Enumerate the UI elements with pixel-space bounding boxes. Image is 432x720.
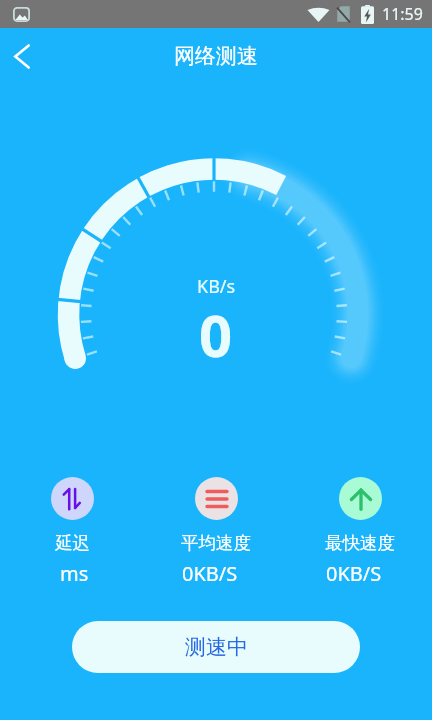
staticText: 平均速度	[181, 532, 251, 554]
staticText: 延迟	[55, 532, 90, 554]
button[interactable]: 最快速度	[300, 477, 420, 587]
button[interactable]: 测速中	[72, 621, 360, 673]
staticText: KB/s	[197, 274, 236, 299]
staticText: 测速中	[185, 634, 248, 660]
button[interactable]: Back	[0, 34, 44, 78]
staticText: 11:59	[382, 3, 423, 25]
staticText: 最快速度	[325, 532, 395, 554]
staticText: 0KB/S	[326, 560, 382, 587]
button[interactable]: 延迟	[12, 477, 132, 587]
button[interactable]: 平均速度	[156, 477, 276, 587]
staticText: 网络测速	[174, 43, 258, 69]
staticText: 0	[199, 295, 233, 374]
staticText: ms	[60, 560, 89, 587]
staticText: 0KB/S	[182, 560, 238, 587]
